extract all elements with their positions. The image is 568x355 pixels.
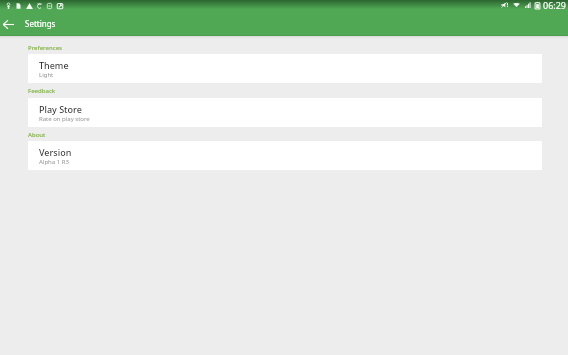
staticText: Light — [39, 71, 54, 79]
staticText: Preferences — [28, 44, 63, 52]
button[interactable]: Play Store — [28, 98, 542, 127]
staticText: Version — [39, 146, 72, 158]
button[interactable]: Version — [28, 141, 542, 170]
staticText: 06:29 — [543, 0, 567, 11]
button[interactable]: Theme — [28, 54, 542, 83]
staticText: Play Store — [39, 103, 82, 115]
staticText: Theme — [39, 59, 69, 71]
staticText: Rate on play store — [39, 115, 90, 123]
staticText: Feedback — [28, 87, 56, 95]
staticText: Settings — [25, 18, 56, 29]
staticText: About — [28, 131, 46, 139]
staticText: Alpha 1 R3 — [39, 158, 69, 166]
button[interactable]: Back — [0, 16, 16, 32]
